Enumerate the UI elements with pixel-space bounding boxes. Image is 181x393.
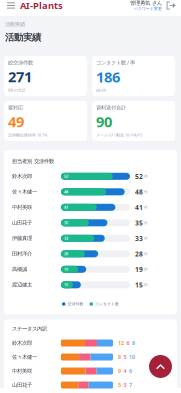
staticText: 52 [64,174,68,179]
staticText: 件 [144,189,148,194]
button[interactable]: メニュー [4,0,18,12]
staticText: 件 [144,220,148,225]
staticText: 35 [135,218,143,227]
staticText: 28 [64,251,68,256]
staticText: 48 [64,189,68,194]
staticText: 9 [118,367,121,375]
staticText: 6 [126,339,129,347]
staticText: 12 [118,339,124,347]
staticText: 交渉件数 [67,302,83,306]
staticText: 件 [144,251,148,256]
staticText: 山田花子 [12,382,32,388]
staticText: 90 [96,112,112,131]
staticText: 8名の合計 [8,87,26,93]
staticText: 佐々木健一 [12,354,37,360]
staticText: 5 [123,353,126,361]
staticText: 件 [144,174,148,179]
staticText: 10 [129,353,135,361]
staticText: 8 [132,339,135,347]
staticText: 7 [129,381,132,389]
staticText: 中村美咲 [12,204,32,211]
staticText: 19 [135,265,143,274]
staticText: 48 [135,187,143,196]
staticText: 総交渉件数 [8,59,33,66]
staticText: 鈴木次郎 [12,173,32,180]
staticText: 件 [144,282,148,287]
staticText: 佐々木健一 [12,188,37,195]
staticText: メール 67 / 郵送 18 / FAX 5 [96,132,142,138]
staticText: 15 [64,282,68,287]
staticText: 52 [135,172,143,181]
staticText: 件 [144,236,148,241]
staticText: 8 [118,353,121,361]
staticText: 鈴木次郎 [12,340,32,346]
staticText: コンタクト数 / 率 [96,59,135,66]
staticText: 6 [129,367,132,375]
staticText: 33 [64,236,68,241]
staticText: 5 [118,381,121,389]
staticText: 資料送付合計 [96,104,126,111]
staticText: 担当者別 交渉件数 [12,158,54,165]
staticText: 高橋誠 [12,266,27,273]
button[interactable]: ログアウト [165,0,177,11]
button[interactable]: パスワード変更 [134,6,162,11]
staticText: 186 [96,67,120,87]
staticText: 定例機会獲得率 18.1% [8,132,47,138]
staticText: 271 [8,67,32,86]
staticText: 49 [8,112,24,131]
staticText: 伊藤真理 [12,235,32,242]
staticText: コンタクト数 [95,302,119,306]
staticText: 活動実績 [5,31,41,43]
staticText: 管理勇気 さん [130,0,162,6]
staticText: 4 [123,367,126,375]
staticText: 33 [135,234,143,243]
staticText: 35 [64,220,68,225]
staticText: 68.6% [96,88,106,93]
staticText: 件 [144,267,148,272]
staticText: 要対応 [8,104,23,111]
staticText: 渡辺健太 [12,281,32,288]
button[interactable]: トップへ戻る [149,355,172,378]
staticText: 田村洋介 [12,250,32,257]
staticText: 3 [123,381,126,389]
staticText: 28 [135,249,143,258]
staticText: 活動実績 [5,21,25,28]
staticText: 41 [135,203,143,212]
staticText: 41 [64,205,68,210]
staticText: ステータス内訳 [12,325,47,332]
staticText: 山田花子 [12,219,32,226]
staticText: 件 [144,205,148,210]
staticText: 中村美咲 [12,368,32,374]
staticText: 15 [135,280,143,289]
staticText: パスワード変更 [134,6,162,11]
staticText: AI-Plants [20,0,63,12]
staticText: 19 [64,267,68,272]
